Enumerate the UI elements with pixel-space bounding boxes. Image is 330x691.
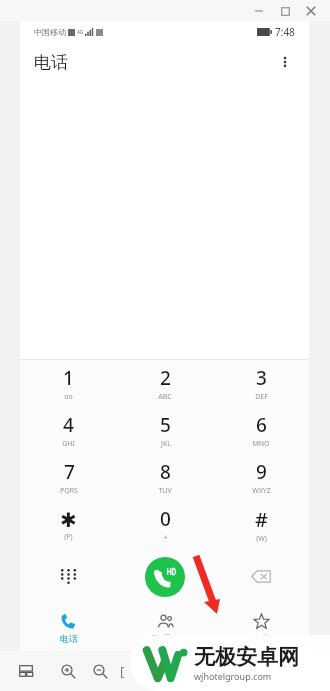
button[interactable]: Maximize <box>272 1 298 21</box>
button[interactable]: 电话 <box>20 605 117 651</box>
staticText: 联系人 <box>152 633 179 644</box>
button[interactable]: 6 <box>213 407 309 454</box>
staticText: 收藏 <box>252 633 270 644</box>
button[interactable]: 1 <box>20 360 117 407</box>
staticText: 2 <box>160 365 171 391</box>
staticText: WXYZ <box>252 486 271 496</box>
button[interactable]: 2 <box>117 360 213 407</box>
staticText: 电话 <box>34 52 68 73</box>
staticText: 3 <box>256 365 267 391</box>
button[interactable]: Minimize <box>246 1 272 21</box>
button[interactable]: # <box>213 501 309 548</box>
staticText: ABC <box>158 392 172 402</box>
staticText: 8 <box>160 459 171 485</box>
staticText: wjhotelgroup.com <box>194 670 272 682</box>
staticText: 6 <box>256 412 267 438</box>
button[interactable]: 7 <box>20 454 117 501</box>
button[interactable]: 3 <box>213 360 309 407</box>
staticText: 中国移动 <box>34 27 66 37</box>
staticText: 4G <box>77 29 84 36</box>
staticText: GHI <box>62 439 75 449</box>
staticText: (P) <box>64 532 73 542</box>
staticText: MNO <box>252 439 270 449</box>
button[interactable]: Close <box>298 1 324 21</box>
staticText: DEF <box>255 392 268 402</box>
button[interactable]: Zoom out <box>88 659 112 683</box>
staticText: 0 <box>160 506 171 532</box>
button[interactable]: Zoom in <box>56 659 80 683</box>
staticText: 5 <box>160 412 171 438</box>
button[interactable]: 4 <box>20 407 117 454</box>
button[interactable]: 收藏 <box>213 605 309 651</box>
staticText: + <box>163 533 168 543</box>
staticText: (W) <box>256 534 267 544</box>
button[interactable]: Backspace <box>213 548 309 605</box>
button[interactable]: 8 <box>117 454 213 501</box>
button[interactable]: Keypad <box>20 548 117 605</box>
button[interactable]: ✱ <box>20 501 117 548</box>
button[interactable]: Call <box>145 557 185 597</box>
staticText: 1 <box>63 365 74 391</box>
staticText: 4 <box>63 412 74 438</box>
staticText: 7 <box>64 459 75 485</box>
staticText: # <box>255 506 268 533</box>
staticText: 9 <box>256 459 267 485</box>
staticText: 7:48 <box>275 25 295 39</box>
staticText: TUV <box>158 486 172 496</box>
button[interactable]: 9 <box>213 454 309 501</box>
button[interactable]: More options <box>269 46 301 78</box>
staticText: ✱ <box>60 508 77 531</box>
button[interactable]: Layout <box>14 659 38 683</box>
staticText: PQRS <box>60 486 78 496</box>
staticText: 无极安卓网 <box>194 644 299 670</box>
staticText: JKL <box>161 439 171 449</box>
staticText: [ <box>120 662 125 680</box>
button[interactable]: 联系人 <box>117 605 213 651</box>
button[interactable]: 5 <box>117 407 213 454</box>
staticText: 电话 <box>60 633 78 644</box>
staticText: oo <box>64 392 73 402</box>
button[interactable]: 0 <box>117 501 213 548</box>
